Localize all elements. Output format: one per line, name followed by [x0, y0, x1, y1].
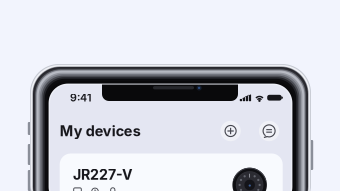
button[interactable]: JR227-V: [60, 153, 283, 191]
staticText: My devices: [60, 122, 141, 140]
staticText: 9:41: [70, 91, 92, 104]
button[interactable]: Messages: [259, 121, 279, 141]
button[interactable]: Add device: [220, 121, 241, 141]
staticText: JR227-V: [73, 166, 133, 183]
